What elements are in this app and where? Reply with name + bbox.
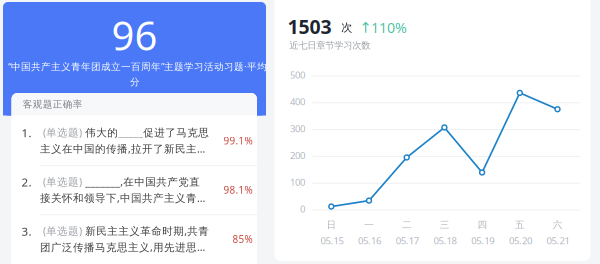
staticText: 05.20 [509,234,532,247]
staticText: 05.17 [396,234,419,247]
staticText: _______,在中国共产党直 [85,174,200,189]
staticText: 二 [402,219,412,231]
staticText: 伟大的_____促进了马克思 [85,125,209,139]
staticText: 400 [290,95,305,108]
staticText: 200 [290,149,305,162]
staticText: 05.21 [547,234,570,247]
staticText: “中国共产主义青年团成立一百周年”主题学习活动习题·平均 [8,60,267,73]
staticText: 日 [327,219,337,231]
staticText: 05.16 [358,234,381,247]
button[interactable]: 1. [11,117,257,165]
staticText: 四 [477,219,487,231]
staticText: 100 [290,175,305,189]
staticText: ↑ [359,19,371,36]
staticText: 99.1% [224,134,253,147]
staticText: 96 [111,8,157,62]
staticText: 2. [21,174,31,190]
staticText: 团广泛传播马克思主义,用先进思… [40,240,205,254]
staticText: 五 [515,219,525,231]
staticText: 110% [371,18,407,37]
staticText: 接关怀和领导下,中国共产主义青… [40,191,205,205]
staticText: 1503 [288,13,332,40]
staticText: 1. [21,125,31,141]
staticText: 05.18 [433,234,456,247]
staticText: (单选题) [43,224,82,238]
staticText: 500 [290,68,305,81]
button[interactable]: 3. [11,215,257,264]
staticText: 85% [233,232,253,246]
staticText: 05.15 [320,234,343,247]
staticText: 六 [553,219,563,231]
staticText: (单选题) [43,125,82,139]
staticText: (单选题) [43,174,82,189]
staticText: 05.19 [471,234,494,247]
staticText: 0 [300,202,305,215]
staticText: 300 [290,122,305,135]
staticText: 主义在中国的传播,拉开了新民主… [40,141,205,156]
staticText: 近七日章节学习次数 [289,39,370,51]
staticText: 分 [130,76,140,88]
staticText: 三 [440,219,450,231]
staticText: 3. [21,223,31,239]
button[interactable]: 2. [11,166,257,214]
staticText: 客观题正确率 [23,98,83,110]
staticText: 次 [341,20,352,34]
staticText: 新民主主义革命时期,共青 [85,224,209,238]
staticText: 98.1% [224,183,253,197]
staticText: 一 [364,219,374,231]
